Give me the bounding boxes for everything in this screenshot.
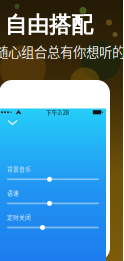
staticText: 自由搭配 [5, 11, 93, 39]
staticText: 定时关闭 [7, 213, 31, 221]
staticText: 语速 [7, 189, 19, 197]
staticText: 背景音乐 [7, 165, 31, 173]
button[interactable]: Collapse [0, 115, 23, 128]
staticText: 下午2:28 [46, 108, 69, 116]
staticText: 随心组合总有你想听的 [0, 42, 124, 61]
